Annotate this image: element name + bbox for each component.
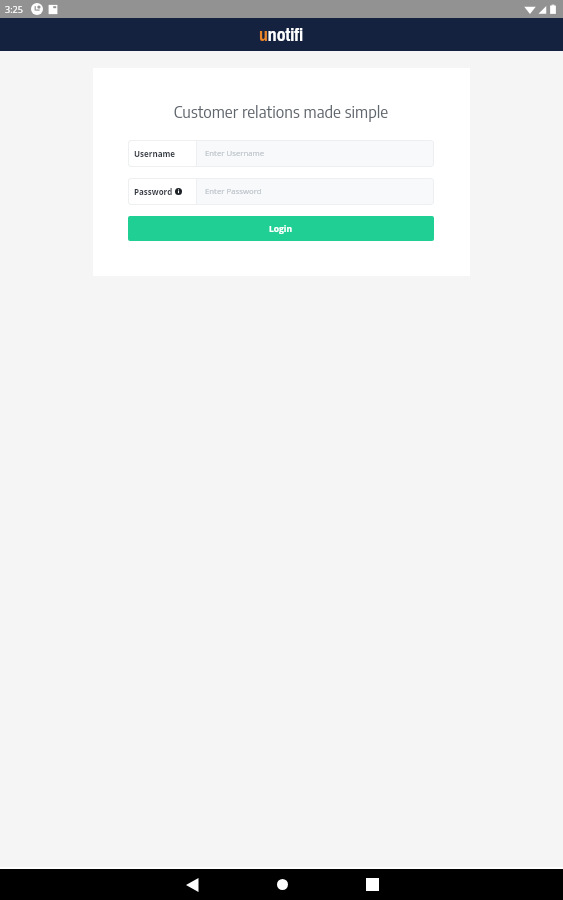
staticText: Password [134, 186, 173, 197]
staticText: unotifi [259, 23, 304, 47]
button[interactable]: Back [147, 869, 237, 900]
button[interactable]: Home [237, 869, 327, 900]
button[interactable]: Username [128, 140, 434, 167]
staticText: Customer relations made simple [128, 101, 434, 121]
button[interactable]: Recent apps [327, 869, 417, 900]
button[interactable]: Login [128, 216, 434, 241]
staticText: Enter Password [205, 186, 262, 197]
staticText: 3:25 [5, 3, 23, 15]
staticText: Login [269, 223, 293, 235]
staticText: Username [134, 148, 176, 159]
button[interactable]: Password [128, 178, 434, 205]
staticText: Enter Username [205, 148, 265, 159]
